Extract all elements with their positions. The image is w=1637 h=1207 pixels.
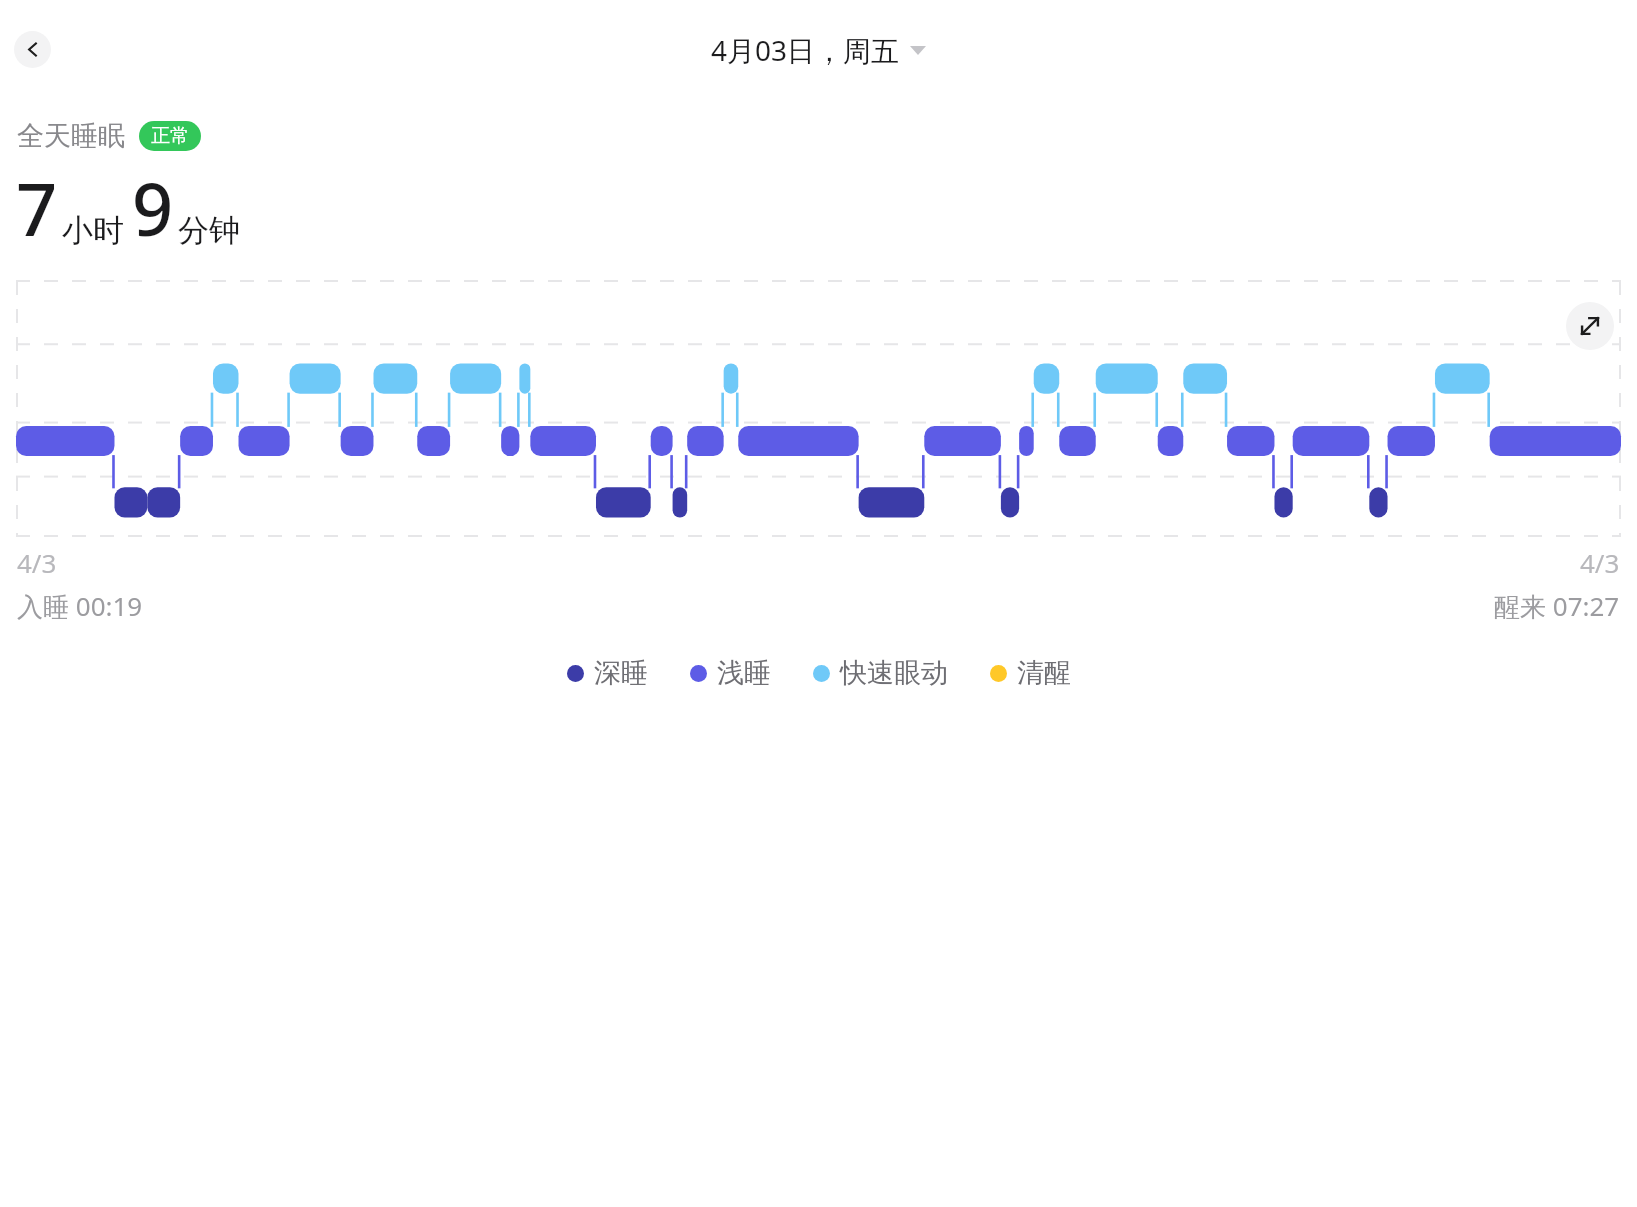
staticText: 分钟 (178, 211, 240, 250)
button[interactable]: 快速眼动 (813, 656, 948, 690)
staticText: 醒来 07:27 (1494, 588, 1620, 624)
staticText: 4/3 (17, 545, 57, 580)
button[interactable]: Back (14, 31, 51, 68)
button[interactable]: 清醒 (990, 656, 1071, 690)
staticText: 浅睡 (717, 656, 771, 690)
staticText: 小时 (62, 211, 124, 250)
staticText: 快速眼动 (840, 656, 948, 690)
staticText: 深睡 (594, 656, 648, 690)
button[interactable]: 浅睡 (690, 656, 771, 690)
staticText: 入睡 00:19 (17, 588, 143, 624)
button[interactable]: Expand chart (1566, 302, 1614, 350)
staticText: 清醒 (1017, 656, 1071, 690)
staticText: 4/3 (1580, 545, 1620, 580)
staticText: 9 (132, 159, 174, 257)
staticText: 4月03日，周五 (711, 31, 900, 69)
button[interactable]: 深睡 (567, 656, 648, 690)
staticText: 正常 (151, 124, 189, 148)
staticText: 7 (16, 159, 58, 257)
staticText: 全天睡眠 (17, 119, 125, 153)
button[interactable]: 4月03日，周五 (711, 31, 926, 69)
